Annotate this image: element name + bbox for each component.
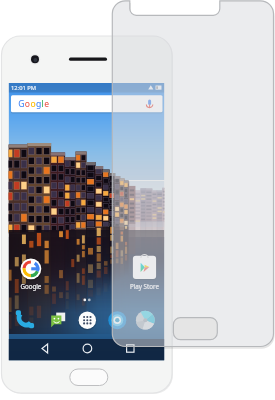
button[interactable]: Phone with tempered glass screen protect… (0, 0, 275, 400)
